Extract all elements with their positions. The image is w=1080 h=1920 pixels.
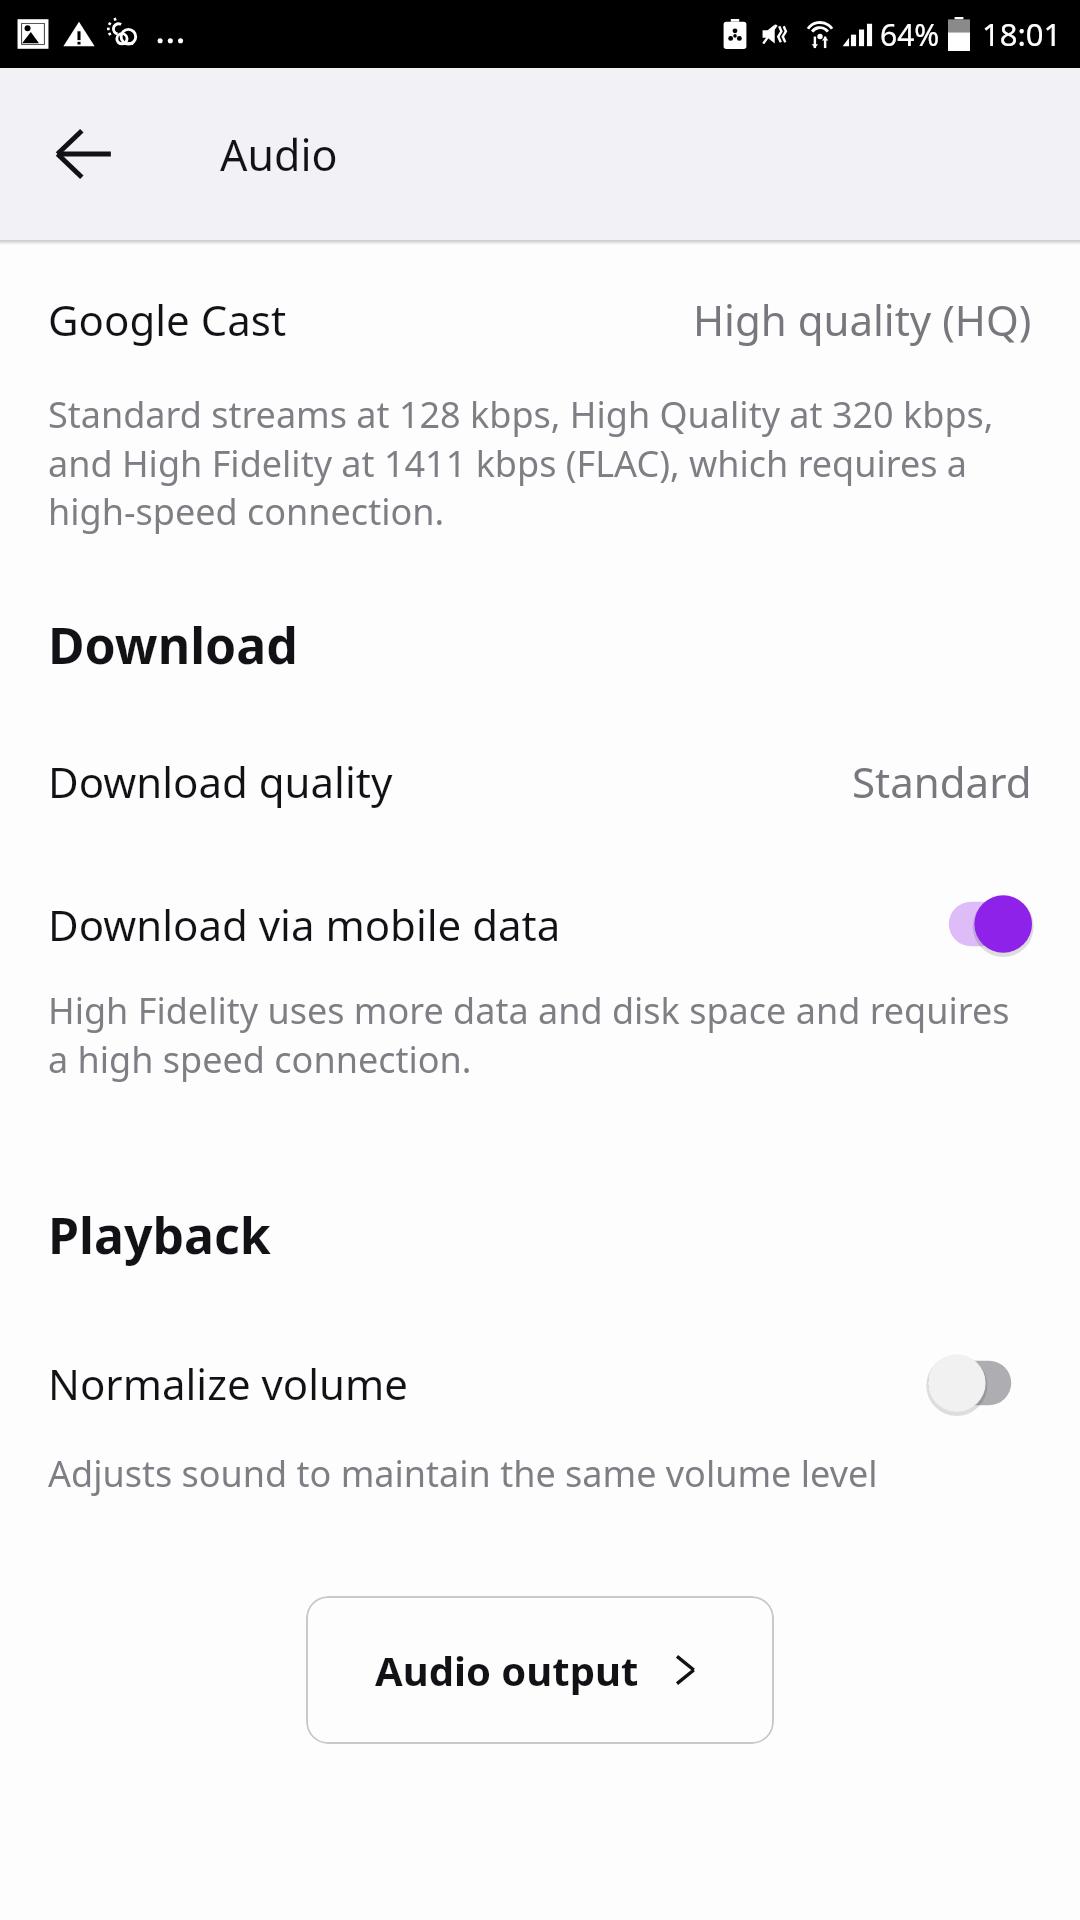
staticText: Google Cast <box>48 291 287 348</box>
button[interactable]: Download quality <box>0 753 1080 810</box>
button[interactable]: Normalize volume <box>0 1347 1080 1419</box>
staticText: Adjusts sound to maintain the same volum… <box>48 1449 878 1498</box>
staticText: Normalize volume <box>48 1355 409 1412</box>
button[interactable]: On <box>928 888 1032 960</box>
button[interactable]: Off <box>928 1347 1032 1419</box>
button[interactable]: Google Cast <box>0 291 1080 348</box>
staticText: Download <box>48 611 298 679</box>
button[interactable]: Audio output <box>306 1596 774 1744</box>
staticText: High Fidelity uses more data and disk sp… <box>48 986 1032 1083</box>
staticText: Playback <box>48 1201 271 1269</box>
staticText: Download quality <box>48 753 393 810</box>
staticText: 64% <box>880 14 940 55</box>
staticText: Standard streams at 128 kbps, High Quali… <box>48 390 1032 535</box>
staticText: 18:01 <box>982 13 1062 55</box>
button[interactable]: Download via mobile data <box>0 888 1080 960</box>
staticText: High quality (HQ) <box>693 291 1032 348</box>
staticText: Audio <box>220 125 338 184</box>
staticText: Download via mobile data <box>48 896 561 953</box>
staticText: Standard <box>852 753 1032 810</box>
button[interactable]: Back <box>30 101 136 207</box>
staticText: Audio output <box>375 1643 639 1697</box>
